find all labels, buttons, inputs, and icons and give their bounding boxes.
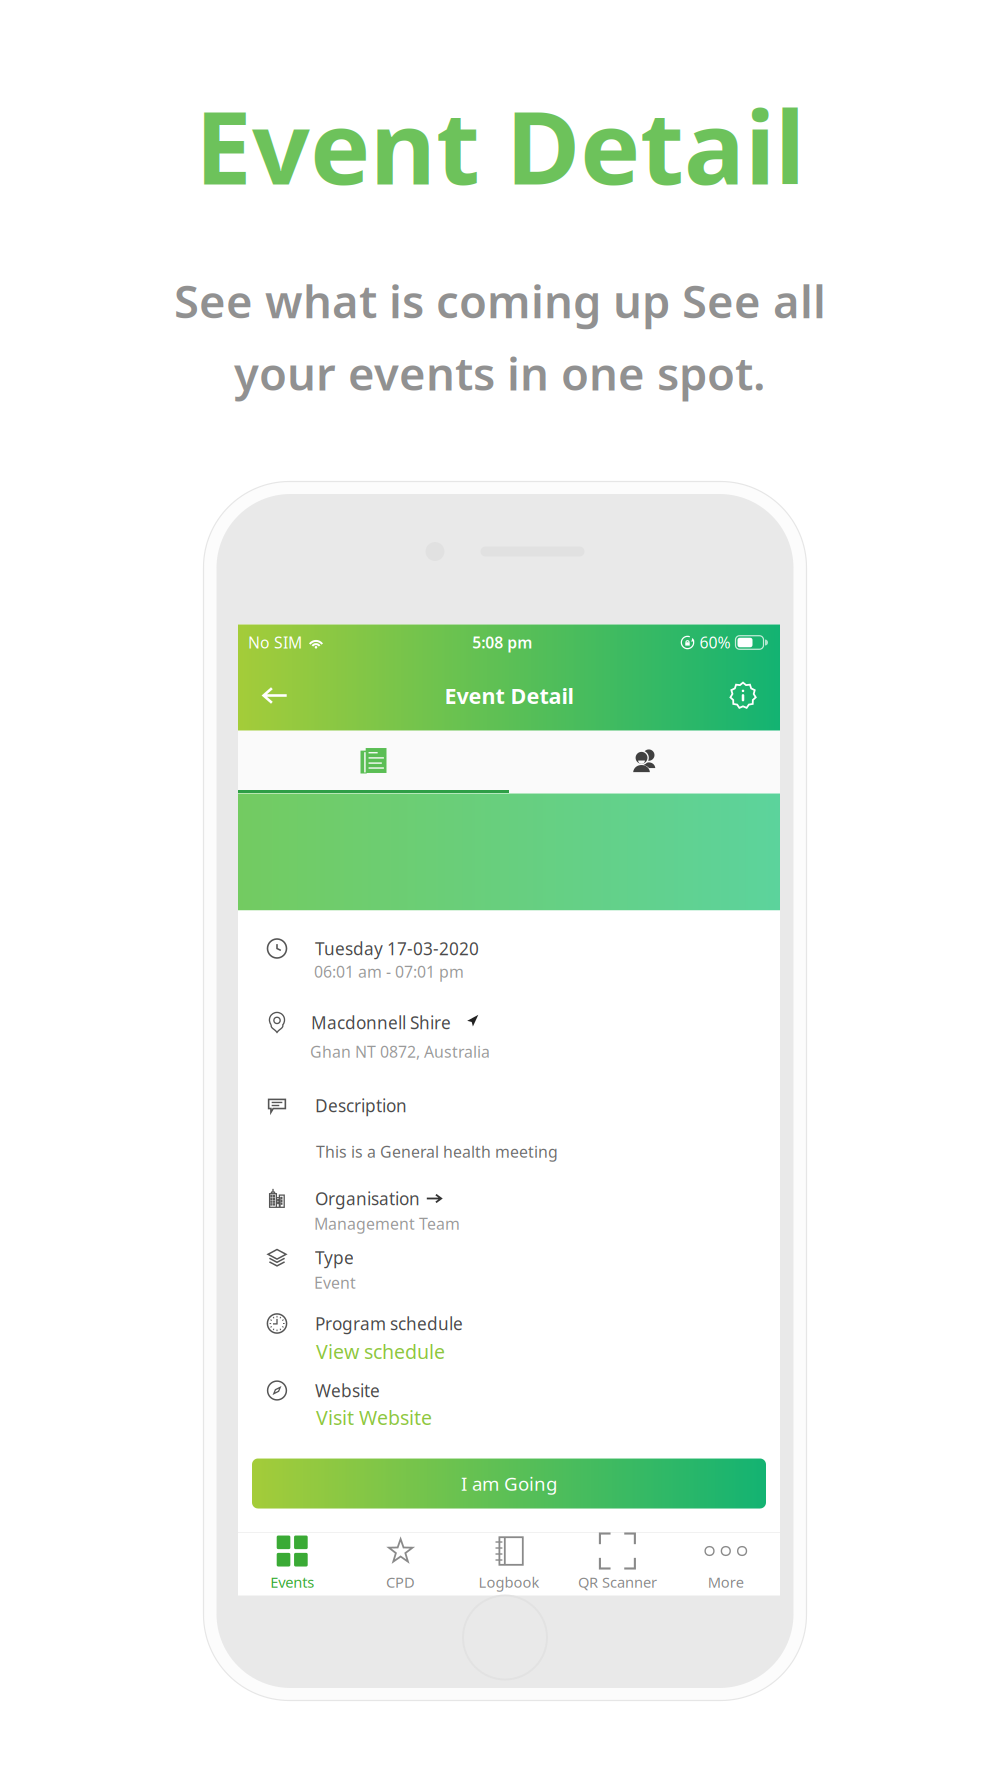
button[interactable]: Details <box>238 731 509 793</box>
staticText: Events <box>270 1572 314 1592</box>
button[interactable]: QR Scanner <box>563 1527 672 1601</box>
staticText: Visit Website <box>316 1404 432 1431</box>
staticText: QR Scanner <box>578 1572 657 1592</box>
staticText: Program schedule <box>315 1312 463 1335</box>
button[interactable]: Organisation <box>238 910 780 1440</box>
button[interactable]: I am Going <box>252 1458 766 1508</box>
button[interactable]: More <box>672 1527 780 1601</box>
staticText: More <box>708 1572 744 1592</box>
staticText: View schedule <box>316 1338 445 1365</box>
staticText: 06:01 am - 07:01 pm <box>314 961 464 982</box>
button[interactable]: Visit Website <box>238 910 780 1440</box>
staticText: Logbook <box>478 1572 539 1592</box>
staticText: CPD <box>386 1572 415 1592</box>
staticText: Management Team <box>314 1213 460 1234</box>
staticText: Organisation <box>315 1187 420 1210</box>
button[interactable]: Macdonnell Shire <box>238 910 780 1440</box>
button[interactable]: View organisation <box>422 1186 446 1210</box>
staticText: Type <box>315 1246 354 1269</box>
button[interactable]: Information <box>718 670 768 720</box>
staticText: Event Detail <box>444 681 573 710</box>
staticText: Tuesday 17-03-2020 <box>315 937 479 960</box>
staticText: Event <box>314 1272 356 1293</box>
button[interactable]: CPD <box>346 1527 455 1601</box>
staticText: 5:08 pm <box>472 632 532 653</box>
button[interactable]: Directions <box>460 1008 484 1032</box>
staticText: Macdonnell Shire <box>311 1011 451 1034</box>
staticText: No SIM <box>248 632 302 653</box>
button[interactable]: Logbook <box>455 1527 563 1601</box>
button[interactable]: Attendees <box>509 731 780 793</box>
staticText: Ghan NT 0872, Australia <box>310 1041 490 1062</box>
button[interactable]: Back <box>250 670 300 720</box>
staticText: Description <box>315 1094 407 1117</box>
staticText: your events in one spot. <box>234 343 766 403</box>
staticText: Website <box>315 1379 380 1402</box>
staticText: See what is coming up See all <box>174 271 826 331</box>
staticText: I am Going <box>461 1471 557 1496</box>
staticText: 60% <box>699 632 730 653</box>
staticText: This is a General health meeting <box>316 1141 558 1162</box>
button[interactable]: Events <box>238 1527 346 1601</box>
staticText: Event Detail <box>195 78 805 213</box>
button[interactable]: View schedule <box>238 910 780 1440</box>
